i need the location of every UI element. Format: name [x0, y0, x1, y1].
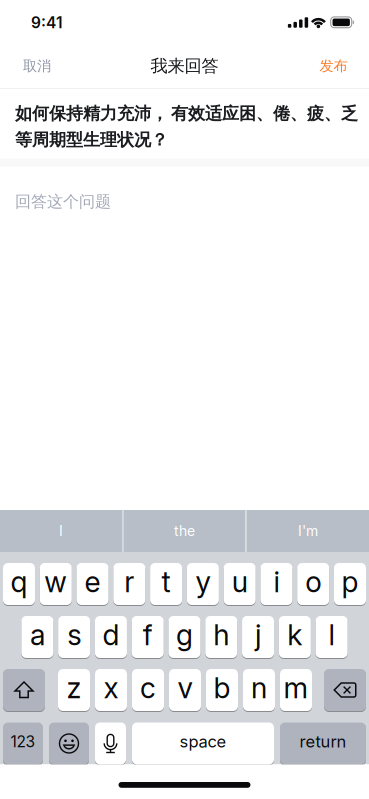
button[interactable]: k — [279, 616, 311, 658]
button[interactable]: space — [132, 722, 274, 764]
staticText: p — [341, 565, 358, 599]
button[interactable]: a — [21, 616, 53, 658]
button[interactable]: l — [316, 616, 348, 658]
button[interactable]: u — [224, 563, 256, 605]
button[interactable]: I — [0, 510, 122, 552]
staticText: m — [283, 671, 308, 705]
staticText: c — [140, 671, 156, 705]
staticText: i — [273, 565, 279, 599]
staticText: 取消 — [23, 57, 51, 75]
button[interactable]: x — [95, 669, 127, 711]
staticText: h — [213, 618, 229, 652]
button[interactable]: r — [113, 563, 145, 605]
button[interactable]: z — [58, 669, 90, 711]
staticText: 如何保持精力充沛， 有效适应困、倦、疲、乏 — [15, 103, 358, 124]
button[interactable]: Numbers — [3, 722, 43, 764]
staticText: I — [59, 522, 63, 539]
staticText: o — [305, 565, 321, 599]
button[interactable]: return — [280, 722, 366, 764]
staticText: f — [143, 618, 153, 652]
button[interactable]: m — [280, 669, 312, 711]
staticText: v — [177, 671, 192, 705]
button[interactable]: i — [260, 563, 292, 605]
button[interactable]: 取消 — [0, 57, 51, 75]
staticText: g — [176, 618, 193, 652]
staticText: t — [162, 565, 171, 599]
staticText: 123 — [10, 732, 35, 751]
staticText: l — [329, 618, 335, 652]
button[interactable]: y — [187, 563, 219, 605]
staticText: z — [66, 671, 81, 705]
staticText: a — [30, 618, 45, 652]
button[interactable]: f — [132, 616, 164, 658]
staticText: b — [213, 671, 230, 705]
button[interactable]: n — [243, 669, 275, 711]
button[interactable]: w — [40, 563, 72, 605]
staticText: u — [232, 565, 248, 599]
button[interactable]: j — [242, 616, 274, 658]
button[interactable]: v — [169, 669, 201, 711]
button[interactable]: Emoji — [49, 722, 89, 764]
button[interactable]: Shift — [3, 669, 45, 711]
button[interactable]: t — [150, 563, 182, 605]
staticText: s — [67, 618, 81, 652]
staticText: 等周期型生理状况？ — [15, 129, 168, 151]
staticText: the — [174, 522, 195, 539]
button[interactable]: Delete — [324, 669, 366, 711]
staticText: r — [124, 565, 134, 599]
button[interactable]: e — [77, 563, 109, 605]
staticText: 我来回答 — [150, 55, 218, 77]
staticText: j — [255, 618, 261, 652]
button[interactable]: g — [168, 616, 200, 658]
button[interactable]: 发布 — [319, 57, 369, 75]
staticText: return — [299, 731, 346, 751]
staticText: w — [44, 565, 67, 599]
button[interactable]: the — [123, 510, 245, 552]
button[interactable]: s — [58, 616, 90, 658]
staticText: y — [195, 565, 210, 599]
staticText: 9:41 — [31, 13, 63, 32]
staticText: space — [179, 731, 226, 751]
staticText: n — [251, 671, 267, 705]
button[interactable]: c — [132, 669, 164, 711]
staticText: q — [10, 565, 27, 599]
button[interactable]: b — [206, 669, 238, 711]
button[interactable]: Dictation — [95, 722, 126, 764]
button[interactable]: I'm — [247, 510, 369, 552]
button[interactable]: p — [334, 563, 366, 605]
staticText: 发布 — [319, 57, 347, 75]
staticText: d — [102, 618, 119, 652]
staticText: k — [287, 618, 302, 652]
staticText: 回答这个问题 — [15, 192, 111, 212]
staticText: x — [103, 671, 118, 705]
button[interactable]: d — [95, 616, 127, 658]
button[interactable]: h — [205, 616, 237, 658]
button[interactable]: q — [3, 563, 35, 605]
staticText: I'm — [298, 522, 318, 539]
button[interactable]: o — [297, 563, 329, 605]
staticText: e — [85, 565, 101, 599]
